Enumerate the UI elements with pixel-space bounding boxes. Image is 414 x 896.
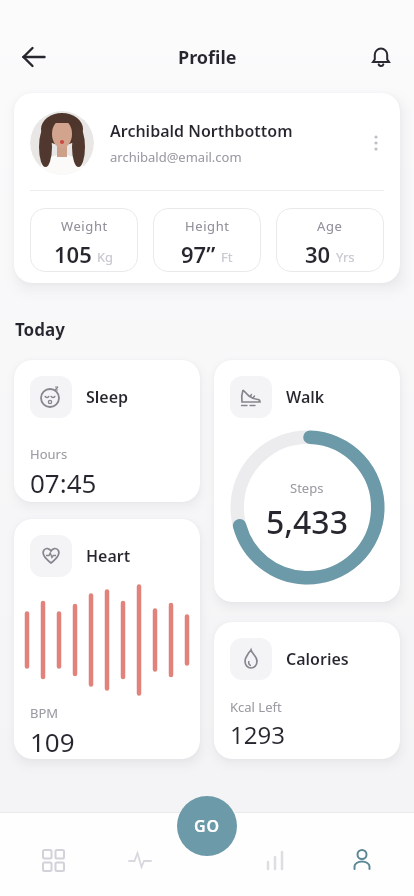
staticText: archibald@email.com	[110, 148, 242, 166]
staticText: 97”	[181, 239, 216, 269]
button[interactable]	[251, 836, 299, 884]
button[interactable]: GO	[177, 796, 237, 856]
staticText: Kg	[97, 248, 114, 266]
button[interactable]	[368, 135, 384, 151]
staticText: 109	[30, 724, 75, 759]
button[interactable]: Heart	[14, 519, 200, 759]
staticText: Hours	[30, 445, 68, 463]
button[interactable]	[338, 836, 386, 884]
staticText: 07:45	[30, 465, 97, 500]
staticText: Sleep	[86, 386, 129, 408]
staticText: Yrs	[336, 248, 355, 266]
staticText: Today	[15, 318, 65, 341]
staticText: Kcal Left	[230, 698, 282, 716]
staticText: 105	[54, 239, 92, 269]
staticText: Age	[317, 217, 343, 235]
staticText: Steps	[290, 479, 324, 497]
staticText: Ft	[221, 248, 233, 266]
staticText: Heart	[86, 545, 131, 567]
staticText: Archibald Northbottom	[110, 120, 293, 142]
button[interactable]: Sleep	[14, 360, 200, 502]
staticText: 1293	[230, 718, 285, 751]
staticText: Height	[185, 217, 230, 235]
staticText: Calories	[286, 648, 349, 670]
button[interactable]	[116, 836, 164, 884]
button[interactable]: Weight	[30, 208, 138, 272]
staticText: GO	[194, 815, 221, 837]
button[interactable]: Walk	[214, 360, 400, 602]
button[interactable]	[29, 836, 77, 884]
staticText: Walk	[286, 386, 325, 408]
staticText: Weight	[61, 217, 108, 235]
staticText: 5,433	[266, 500, 348, 544]
button[interactable]	[12, 35, 56, 79]
staticText: 30	[305, 239, 331, 269]
button[interactable]: Calories	[214, 622, 400, 759]
button[interactable]: Age	[276, 208, 384, 272]
staticText: Profile	[178, 45, 237, 70]
button[interactable]: Height	[153, 208, 261, 272]
button[interactable]	[359, 35, 403, 79]
staticText: BPM	[30, 704, 59, 722]
